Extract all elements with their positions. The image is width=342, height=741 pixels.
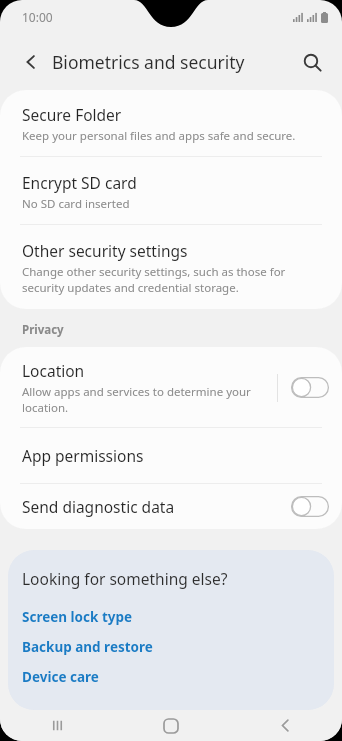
staticText: Other security settings	[22, 240, 188, 261]
staticText: No SD card inserted	[22, 196, 130, 212]
staticText: Secure Folder	[22, 104, 122, 125]
button[interactable]: Screen lock type	[22, 602, 320, 632]
button[interactable]: Device care	[22, 662, 320, 692]
button[interactable]: Back	[10, 41, 52, 83]
button[interactable]: Location	[0, 347, 342, 427]
staticText: Device care	[22, 668, 99, 686]
staticText: Privacy	[22, 322, 64, 338]
staticText: Location	[22, 360, 85, 381]
button[interactable]: App permissions	[0, 428, 342, 483]
button[interactable]: Send diagnostic data	[0, 484, 342, 529]
staticText: App permissions	[22, 445, 144, 466]
button[interactable]: Secure Folder	[0, 90, 342, 156]
staticText: Screen lock type	[22, 608, 133, 626]
staticText: Allow apps and services to determine you…	[22, 384, 269, 415]
staticText: Keep your personal files and apps safe a…	[22, 128, 296, 144]
button[interactable]: Encrypt SD card	[0, 157, 342, 224]
button[interactable]: Home	[114, 710, 228, 741]
button[interactable]: Recent apps	[0, 710, 114, 741]
button[interactable]: Backup and restore	[22, 632, 320, 662]
button[interactable]: Other security settings	[0, 225, 342, 309]
button[interactable]: Search	[290, 40, 334, 84]
button[interactable]: Location toggle	[278, 371, 342, 404]
staticText: Looking for something else?	[22, 568, 228, 589]
staticText: Send diagnostic data	[22, 496, 175, 517]
staticText: Encrypt SD card	[22, 172, 137, 193]
staticText: Change other security settings, such as …	[22, 264, 320, 295]
staticText: 10:00	[22, 9, 53, 25]
button[interactable]: Back	[228, 710, 342, 741]
staticText: Biometrics and security	[52, 50, 245, 74]
staticText: Backup and restore	[22, 638, 153, 656]
